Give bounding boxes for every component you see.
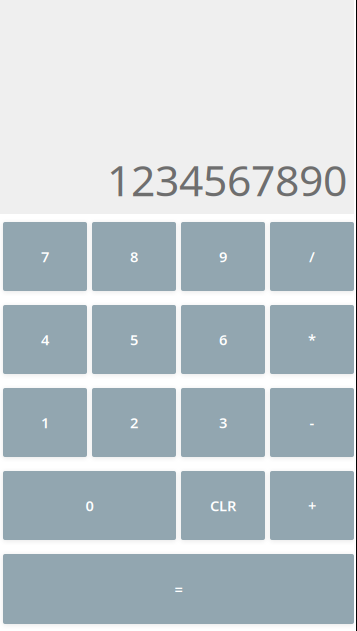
button[interactable]: Add: [270, 471, 354, 540]
button[interactable]: 6: [181, 305, 265, 374]
button[interactable]: Divide: [270, 222, 354, 291]
button[interactable]: 5: [92, 305, 176, 374]
staticText: 1: [41, 413, 49, 432]
staticText: 0: [85, 496, 93, 515]
button[interactable]: Subtract: [270, 388, 354, 457]
staticText: 7: [41, 247, 49, 266]
staticText: 2: [130, 413, 138, 432]
button[interactable]: 8: [92, 222, 176, 291]
staticText: CLR: [210, 496, 236, 515]
staticText: *: [308, 330, 316, 349]
button[interactable]: 4: [3, 305, 87, 374]
staticText: 5: [130, 330, 138, 349]
button[interactable]: Clear: [181, 471, 265, 540]
button[interactable]: 0: [3, 471, 176, 540]
staticText: -: [309, 413, 314, 432]
staticText: /: [309, 247, 315, 266]
button[interactable]: 7: [3, 222, 87, 291]
button[interactable]: 1: [3, 388, 87, 457]
staticText: +: [308, 496, 316, 515]
staticText: 8: [130, 247, 138, 266]
staticText: 4: [41, 330, 49, 349]
button[interactable]: 9: [181, 222, 265, 291]
button[interactable]: Multiply: [270, 305, 354, 374]
staticText: 6: [219, 330, 227, 349]
button[interactable]: 2: [92, 388, 176, 457]
staticText: =: [174, 579, 182, 599]
button[interactable]: 3: [181, 388, 265, 457]
staticText: 9: [219, 247, 227, 266]
staticText: 3: [219, 413, 227, 432]
staticText: 1234567890: [107, 151, 347, 208]
